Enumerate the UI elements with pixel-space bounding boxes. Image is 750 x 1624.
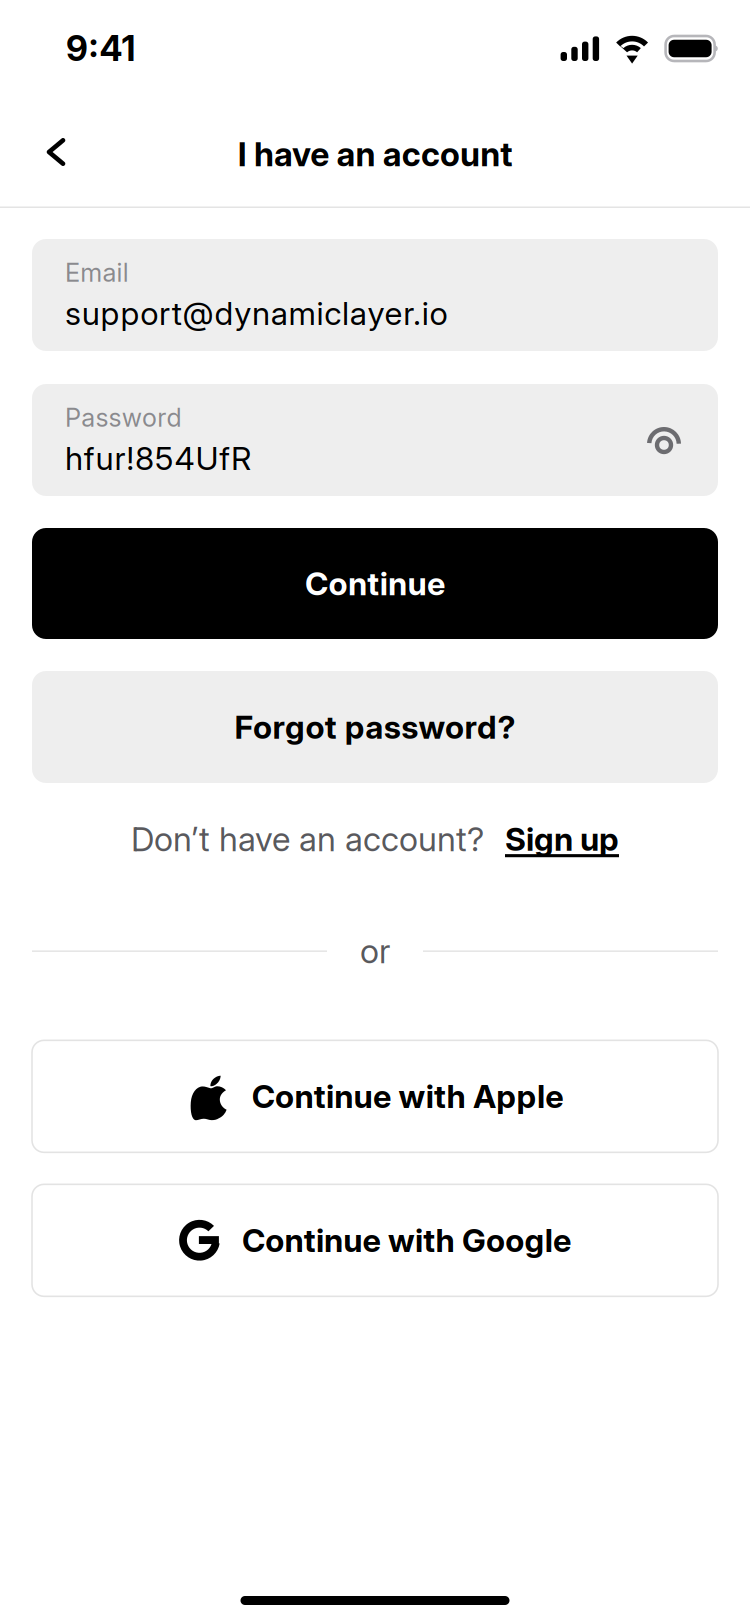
staticText: Sign up [505, 820, 619, 858]
staticText: Continue with Google [242, 1221, 571, 1260]
staticText: or [360, 931, 390, 971]
button[interactable]: Show password [636, 412, 692, 468]
staticText: support@dynamiclayer.io [65, 294, 448, 333]
button[interactable]: Forgot password? [32, 671, 718, 783]
button[interactable]: Continue [32, 528, 718, 639]
staticText: Password [65, 402, 181, 433]
staticText: Email [65, 257, 129, 288]
staticText: Continue with Apple [252, 1077, 563, 1116]
staticText: Forgot password? [235, 708, 515, 746]
button[interactable]: Continue with Apple [32, 1040, 718, 1152]
button[interactable]: Back [28, 126, 84, 182]
staticText: Don’t have an account? [131, 819, 484, 859]
button[interactable]: Sign up [505, 820, 619, 858]
staticText: 9:41 [66, 27, 135, 69]
button[interactable]: Continue with Google [32, 1184, 718, 1296]
staticText: Continue [305, 564, 445, 603]
staticText: I have an account [238, 134, 512, 174]
staticText: hfur!854UfR [65, 439, 251, 478]
